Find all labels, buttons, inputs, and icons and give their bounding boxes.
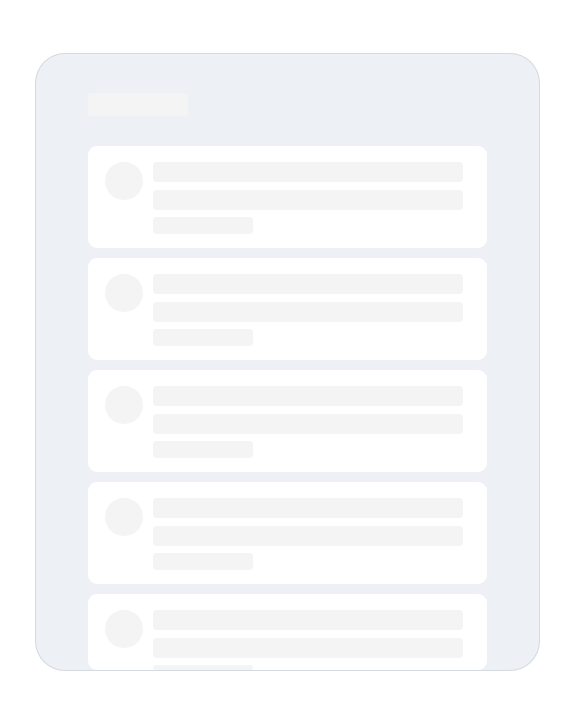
button[interactable]: Loading list item (88, 482, 487, 584)
button[interactable]: Loading list item (88, 146, 487, 248)
button[interactable]: Loading list item (88, 594, 487, 670)
button[interactable]: Loading list item (88, 258, 487, 360)
button[interactable]: Loading list item (88, 370, 487, 472)
